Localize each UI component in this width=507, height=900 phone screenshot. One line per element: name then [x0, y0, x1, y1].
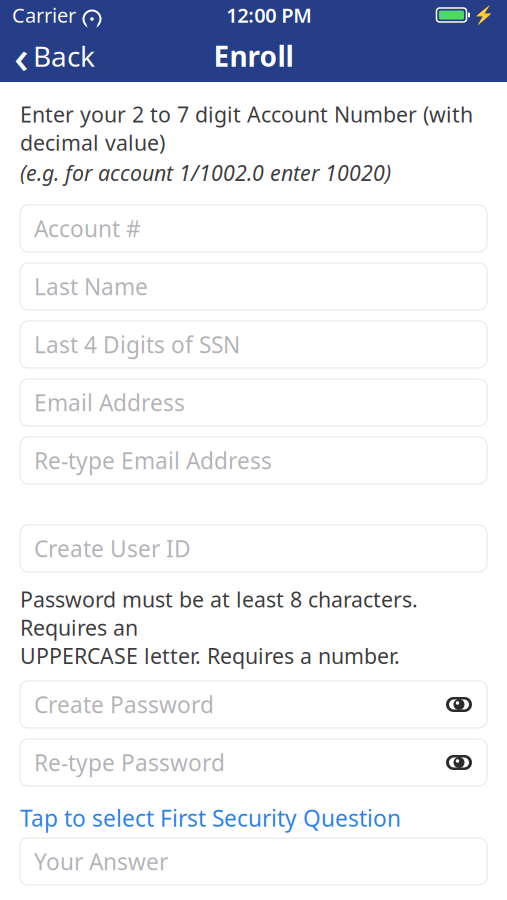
staticText: Create User ID [34, 533, 191, 563]
staticText: Enter your 2 to 7 digit Account Number (… [20, 100, 473, 128]
staticText: Re-type Email Address [34, 445, 272, 475]
staticText: Last Name [34, 271, 148, 301]
staticText: Enroll [213, 37, 293, 75]
staticText: Account # [34, 213, 141, 243]
staticText: ⚡ [473, 5, 495, 25]
staticText: Carrier [12, 2, 76, 28]
staticText: Re-type Password [34, 747, 225, 777]
staticText: Your Answer [34, 846, 168, 876]
staticText: ‹ [14, 26, 29, 86]
staticText: decimal value) [20, 128, 165, 157]
staticText: (e.g. for account 1/1002.0 enter 10020) [20, 159, 391, 187]
staticText: Back [33, 37, 95, 75]
staticText: Tap to select First Security Question [20, 803, 401, 833]
button[interactable]: Tap to select First Security Question [20, 805, 487, 831]
staticText: UPPERCASE letter. Requires a number. [20, 642, 400, 670]
staticText: Create Password [34, 689, 214, 719]
staticText: 12:00 PM [226, 2, 312, 28]
staticText: Email Address [34, 387, 185, 417]
staticText: Password must be at least 8 characters. … [20, 585, 418, 642]
button[interactable]: ‹ [0, 32, 109, 80]
staticText: Last 4 Digits of SSN [34, 329, 240, 359]
